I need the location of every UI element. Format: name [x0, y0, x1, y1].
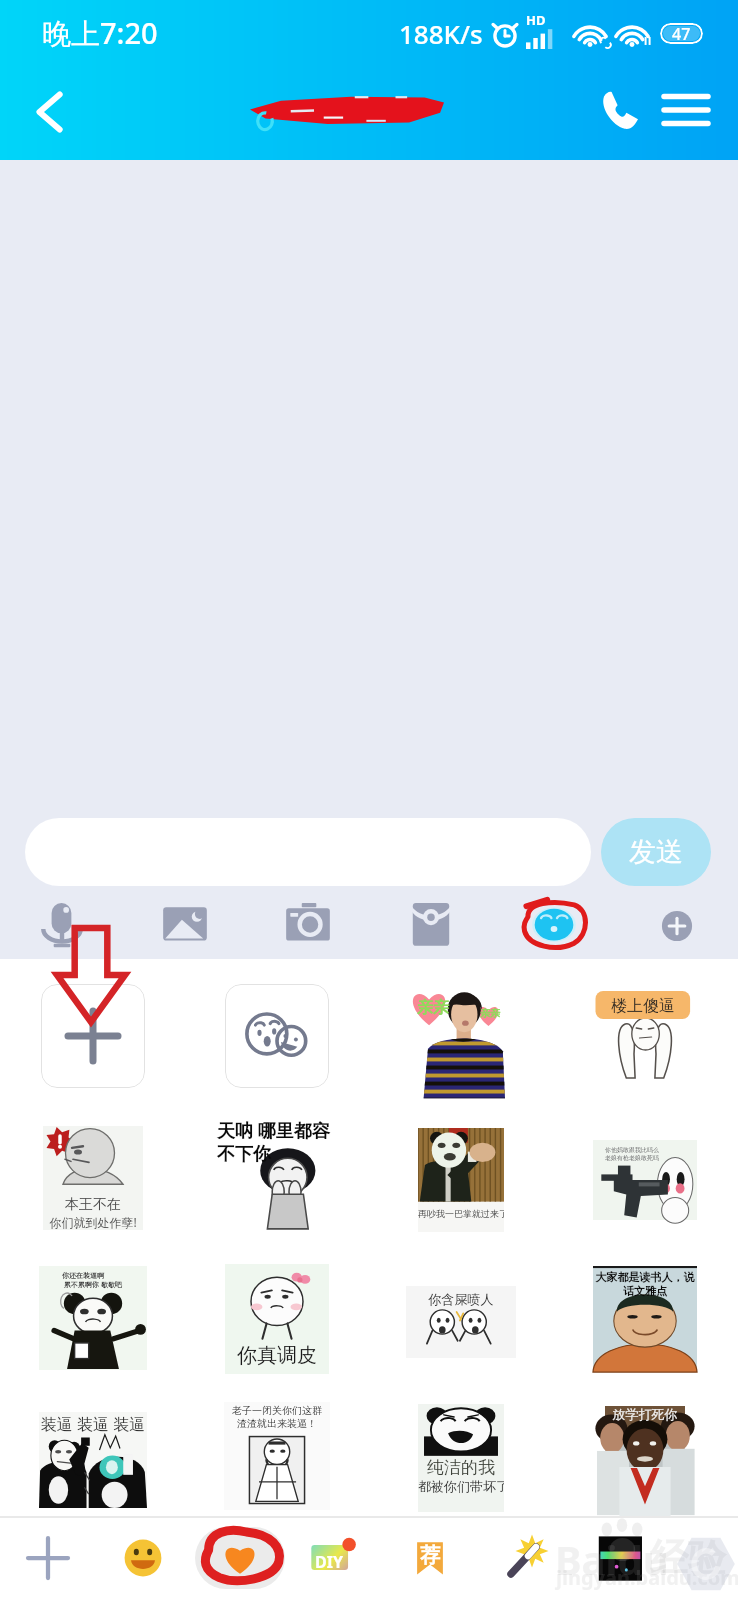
button[interactable]: Camera	[246, 893, 369, 959]
staticText: 放学打死你	[605, 1406, 685, 1422]
button[interactable]: Gallery	[123, 893, 246, 959]
staticText: HD	[526, 11, 546, 29]
button[interactable]: Favorites	[192, 1518, 288, 1598]
staticText: 你还在装逼啊	[62, 1271, 104, 1280]
staticText: 累不累啊你 歇歇吧	[62, 1280, 122, 1290]
staticText: 亲亲	[480, 1007, 500, 1020]
button[interactable]: King sticker	[43, 1126, 143, 1230]
staticText: 本王不在	[43, 1196, 143, 1214]
button[interactable]: Pure me sticker	[418, 1404, 504, 1512]
button[interactable]: After school sticker	[605, 1406, 685, 1513]
button[interactable]: 发送	[601, 818, 711, 886]
button[interactable]: More options	[615, 893, 738, 959]
button[interactable]: Emoji	[492, 893, 615, 959]
staticText: 经验	[650, 1534, 726, 1582]
button[interactable]	[25, 818, 591, 886]
button[interactable]: Show off sticker	[39, 1412, 147, 1508]
button[interactable]: Spray sticker	[406, 1286, 516, 1358]
button[interactable]: Emoji	[95, 1518, 191, 1598]
button[interactable]: Fat man sticker	[593, 1266, 697, 1370]
staticText: Baidu	[555, 1532, 669, 1586]
button[interactable]: DIY	[286, 1518, 382, 1598]
staticText: 老子一闭关你们这群	[224, 1404, 330, 1417]
staticText: 你含屎喷人	[406, 1291, 516, 1307]
staticText: 楼上傻逼	[588, 996, 698, 1016]
button[interactable]: Add sticker	[0, 1518, 96, 1598]
staticText: 你真调皮	[225, 1343, 329, 1368]
staticText: 装逼 装逼 装逼	[39, 1413, 147, 1435]
button[interactable]: Laozi sticker	[224, 1402, 330, 1510]
staticText: 大家都是读书人，说	[593, 1270, 697, 1284]
button[interactable]: Add sticker	[41, 984, 145, 1088]
staticText: DIY	[315, 1551, 343, 1573]
button[interactable]: Voice message	[0, 893, 123, 959]
staticText: 晚上7:20	[42, 13, 158, 53]
button[interactable]: Back	[8, 70, 92, 154]
staticText: 天呐 哪里都容	[217, 1118, 330, 1143]
button[interactable]: Smoking panda sticker	[39, 1266, 147, 1370]
staticText: 老娘有枪老娘敢死吗	[605, 1154, 659, 1162]
staticText: 47	[672, 23, 691, 44]
button[interactable]: Call	[580, 70, 660, 150]
staticText: 不下你	[217, 1143, 271, 1166]
button[interactable]: Upstairs sticker	[590, 988, 700, 1088]
button[interactable]: Panda suit sticker	[418, 1128, 504, 1232]
button[interactable]: Menu	[646, 70, 726, 150]
staticText: 再吵我一巴掌就过来了	[418, 1208, 504, 1219]
staticText: 亲亲	[417, 998, 449, 1018]
staticText: jingyan.baidu.com	[556, 1564, 738, 1591]
staticText: 188K/s	[399, 16, 483, 51]
staticText: 纯洁的我	[418, 1457, 504, 1478]
button[interactable]: Naughty sticker	[225, 1264, 329, 1374]
staticText: 荐	[420, 1543, 440, 1568]
button[interactable]: Sticker store	[574, 1518, 670, 1598]
staticText: 你们就到处作孽!	[43, 1214, 143, 1230]
button[interactable]: Red packet	[369, 893, 492, 959]
button[interactable]: Magic	[478, 1518, 574, 1598]
button[interactable]: Gun sticker	[593, 1140, 697, 1220]
staticText: 都被你们带坏了	[418, 1478, 504, 1494]
staticText: 你他妈敢跟我比吗么	[605, 1146, 659, 1154]
staticText: 渣渣就出来装逼！	[224, 1417, 330, 1430]
button[interactable]: Kiss sticker	[406, 978, 516, 1096]
staticText: 话文雅点	[593, 1284, 697, 1298]
button[interactable]: Recommended	[382, 1518, 478, 1598]
button[interactable]: Emoji pack	[225, 984, 329, 1088]
staticText: 发送	[629, 835, 683, 869]
button[interactable]: Oh my sticker	[217, 1118, 337, 1230]
